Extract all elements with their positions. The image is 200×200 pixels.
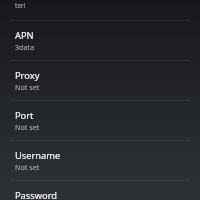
button[interactable]: Port — [0, 101, 200, 140]
button[interactable]: APN — [0, 21, 200, 60]
button[interactable]: Password — [0, 181, 200, 200]
staticText: 3data — [15, 42, 35, 52]
staticText: Proxy — [15, 69, 40, 82]
staticText: Not set — [15, 162, 40, 172]
staticText: Password — [15, 189, 58, 200]
staticText: Username — [15, 149, 61, 162]
button[interactable]: teri — [0, 0, 200, 20]
button[interactable]: Username — [0, 141, 200, 180]
staticText: APN — [15, 29, 34, 42]
staticText: Port — [15, 109, 34, 122]
button[interactable]: Proxy — [0, 61, 200, 100]
staticText: Not set — [15, 82, 40, 92]
staticText: teri — [15, 1, 26, 10]
staticText: Not set — [15, 122, 40, 132]
